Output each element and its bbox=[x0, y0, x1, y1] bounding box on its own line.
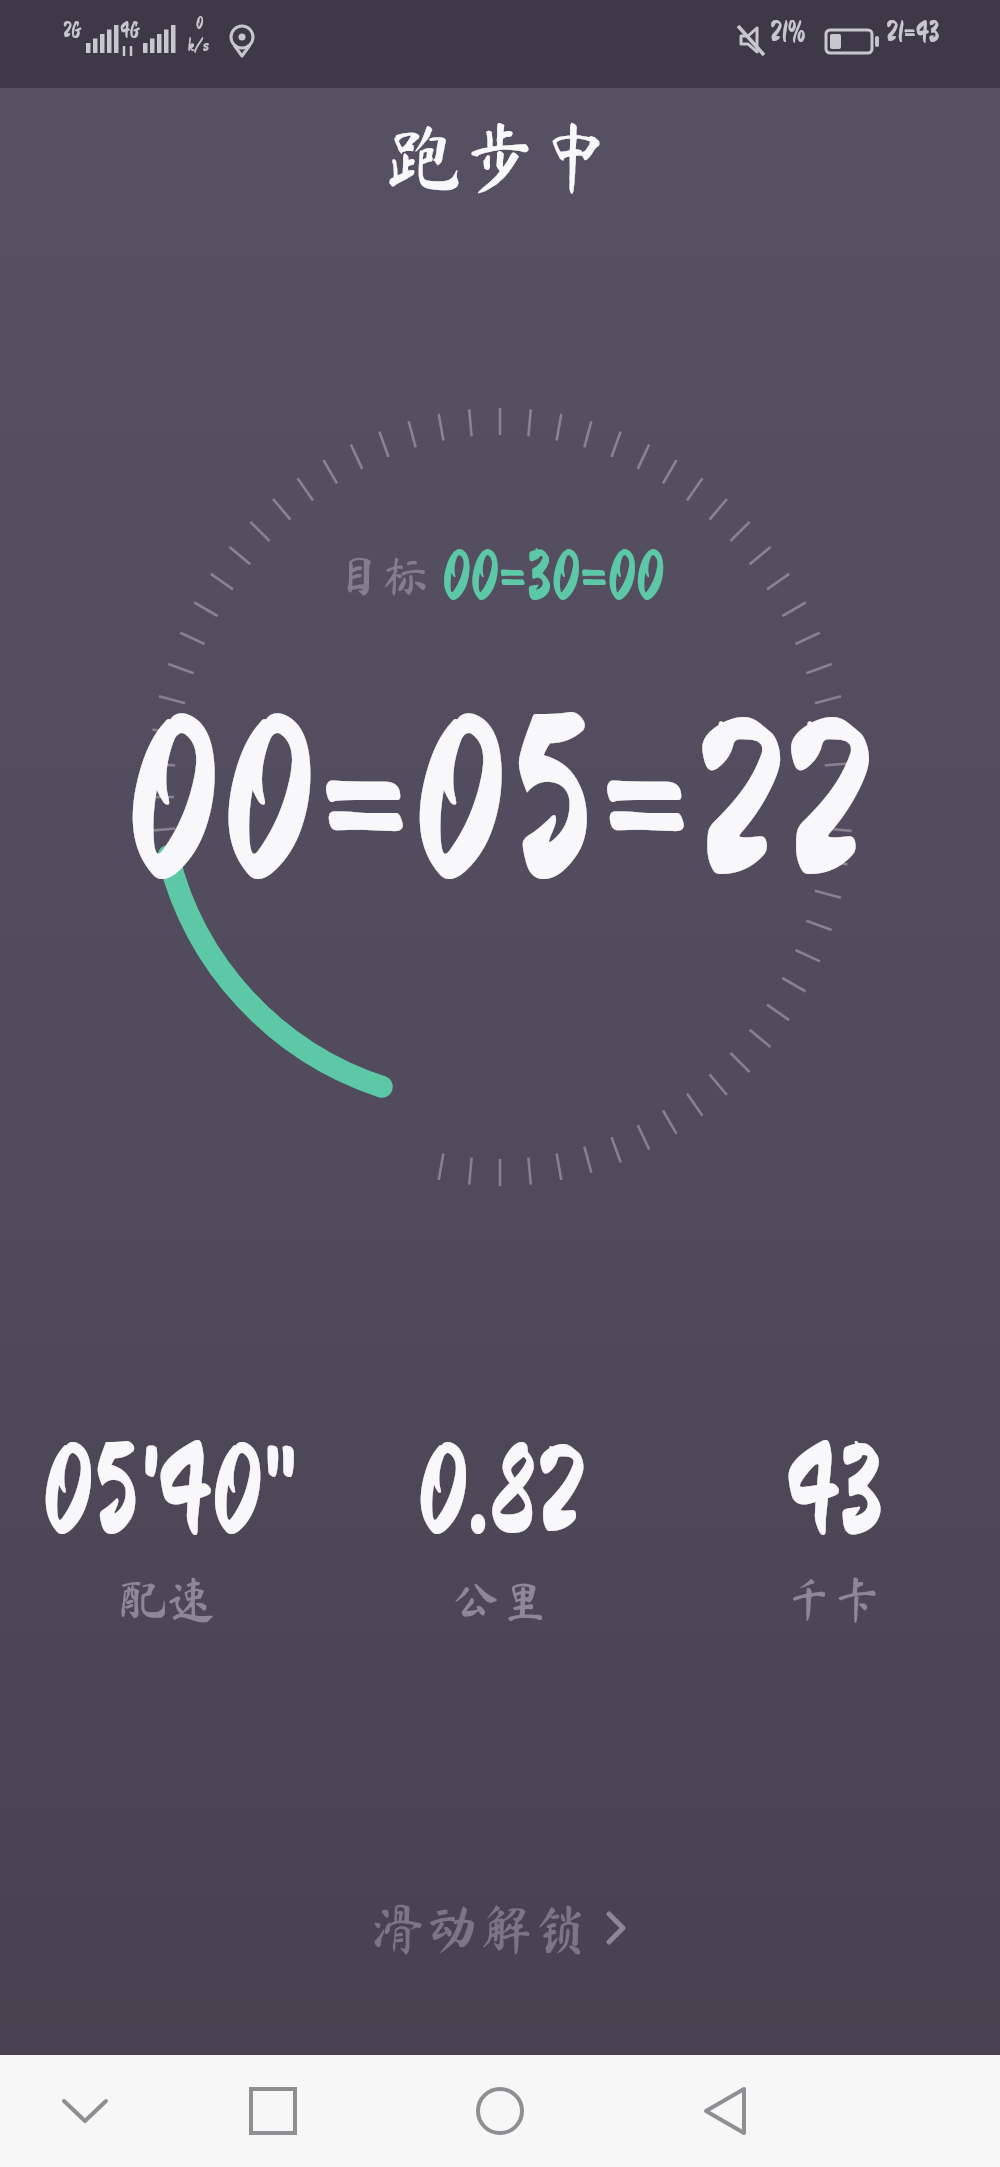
button[interactable] bbox=[680, 2087, 770, 2135]
staticText: 00=30=00 bbox=[442, 541, 664, 611]
button[interactable] bbox=[455, 2087, 545, 2135]
staticText: 21% bbox=[770, 18, 806, 48]
staticText: 目标 bbox=[336, 553, 428, 599]
staticText: 0.82 bbox=[417, 1430, 584, 1555]
button[interactable] bbox=[228, 2087, 318, 2135]
staticText: 跑步中 bbox=[386, 118, 614, 194]
staticText: 00=05=22 bbox=[126, 691, 874, 917]
staticText: k/s bbox=[188, 36, 209, 54]
staticText: 2G bbox=[63, 20, 82, 42]
button[interactable] bbox=[40, 2087, 130, 2135]
staticText: 4G bbox=[120, 20, 140, 42]
staticText: 滑动解锁 bbox=[371, 1901, 587, 1955]
button[interactable]: 滑动解锁 bbox=[0, 1901, 1000, 1955]
staticText: 05'40" bbox=[42, 1430, 293, 1555]
staticText: 21=43 bbox=[886, 18, 940, 48]
staticText: 0 bbox=[196, 14, 204, 32]
staticText: 配速 bbox=[119, 1575, 216, 1623]
staticText: 公里 bbox=[452, 1575, 549, 1623]
staticText: 千卡 bbox=[785, 1575, 882, 1623]
staticText: 43 bbox=[784, 1430, 883, 1555]
